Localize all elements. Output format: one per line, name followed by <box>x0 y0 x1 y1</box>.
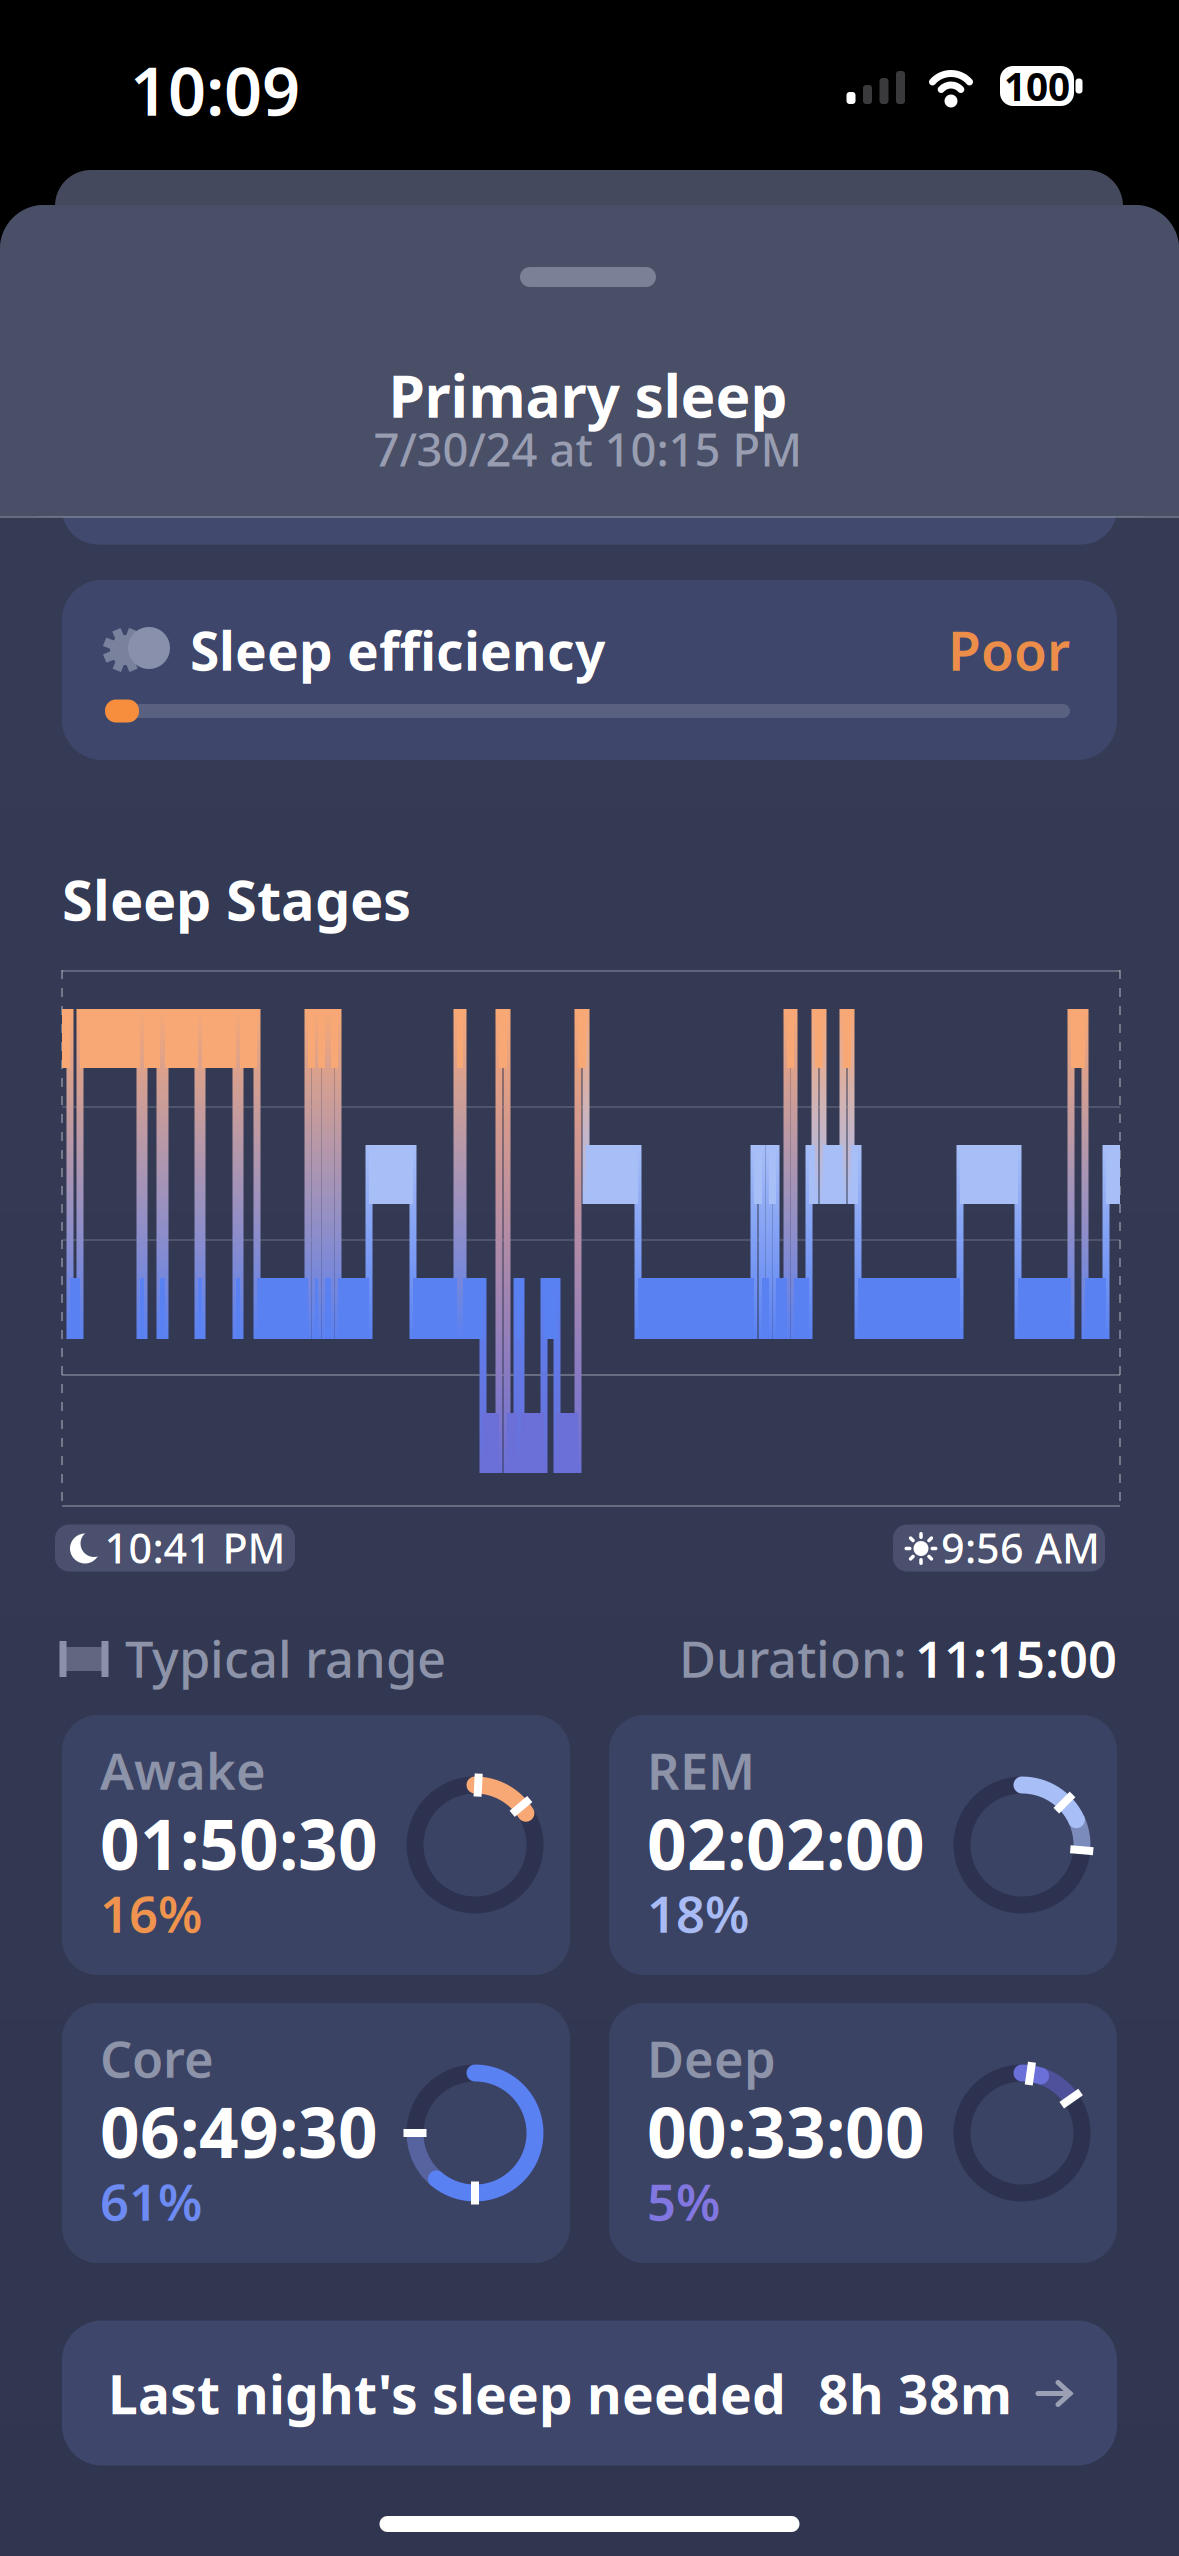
staticText: Core <box>100 2024 214 2092</box>
staticText: 06:49:30 <box>100 2085 378 2177</box>
button[interactable]: Core <box>62 2003 570 2263</box>
staticText: Poor <box>948 615 1070 685</box>
staticText: 100 <box>1004 60 1070 112</box>
button[interactable]: REM <box>609 1715 1117 1975</box>
staticText: 7/30/24 at 10:15 PM <box>373 419 802 479</box>
button[interactable]: Deep <box>609 2003 1117 2263</box>
staticText: 5% <box>647 2167 720 2235</box>
staticText: 10:41 PM <box>104 1520 285 1575</box>
staticText: Duration: <box>679 1624 907 1692</box>
staticText: 11:15:00 <box>915 1624 1117 1692</box>
button[interactable]: Last night's sleep needed <box>62 2320 1117 2465</box>
staticText: Primary sleep <box>388 356 787 434</box>
staticText: 01:50:30 <box>100 1797 378 1889</box>
button[interactable]: 10:41 PM <box>55 1524 295 1571</box>
staticText: REM <box>647 1736 755 1804</box>
button[interactable]: Awake <box>62 1715 570 1975</box>
staticText: 9:56 AM <box>941 1520 1100 1575</box>
staticText: 8h 38m <box>818 2358 1012 2429</box>
staticText: Typical range <box>125 1624 446 1692</box>
staticText: 10:09 <box>130 46 300 134</box>
staticText: 02:02:00 <box>647 1797 925 1889</box>
staticText: Awake <box>100 1736 266 1804</box>
button[interactable]: Sleep efficiency <box>62 580 1117 760</box>
staticText: 61% <box>100 2167 202 2235</box>
staticText: 00:33:00 <box>647 2085 925 2177</box>
staticText: Sleep efficiency <box>190 615 605 685</box>
staticText: 18% <box>647 1879 749 1947</box>
staticText: Deep <box>647 2024 776 2092</box>
staticText: Last night's sleep needed <box>108 2358 786 2429</box>
staticText: 16% <box>100 1879 202 1947</box>
staticText: Sleep Stages <box>62 862 411 936</box>
button[interactable]: 9:56 AM <box>893 1524 1105 1571</box>
